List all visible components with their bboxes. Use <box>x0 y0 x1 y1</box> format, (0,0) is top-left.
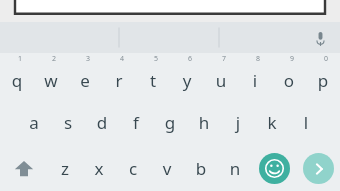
button[interactable]: z <box>48 145 82 191</box>
button[interactable]: Next <box>303 153 334 184</box>
staticText: 3 <box>71 54 105 64</box>
staticText: k <box>255 111 289 134</box>
staticText: h <box>187 111 221 134</box>
button[interactable]: n <box>218 145 252 191</box>
staticText: d <box>85 111 119 134</box>
button[interactable]: g <box>153 99 187 145</box>
button[interactable]: 3 <box>68 53 102 99</box>
staticText: 4 <box>105 54 139 64</box>
staticText: a <box>17 111 51 134</box>
button[interactable]: a <box>17 99 51 145</box>
button[interactable]: h <box>187 99 221 145</box>
staticText: i <box>238 69 272 92</box>
staticText: 5 <box>139 54 173 64</box>
staticText: 0 <box>309 54 340 64</box>
staticText: t <box>136 69 170 92</box>
staticText: c <box>116 157 150 180</box>
staticText: q <box>0 69 34 92</box>
staticText: 8 <box>241 54 275 64</box>
button[interactable]: k <box>255 99 289 145</box>
button[interactable]: 2 <box>34 53 68 99</box>
staticText: l <box>289 111 323 134</box>
button[interactable]: 8 <box>238 53 272 99</box>
staticText: x <box>82 157 116 180</box>
staticText: p <box>306 69 340 92</box>
button[interactable]: 7 <box>204 53 238 99</box>
staticText: f <box>119 111 153 134</box>
staticText: r <box>102 69 136 92</box>
staticText: y <box>170 69 204 92</box>
button[interactable]: 6 <box>170 53 204 99</box>
button[interactable]: Shift <box>0 145 48 191</box>
button[interactable]: b <box>184 145 218 191</box>
button[interactable]: 1 <box>0 53 34 99</box>
button[interactable]: 9 <box>272 53 306 99</box>
staticText: b <box>184 157 218 180</box>
button[interactable]: 0 <box>306 53 340 99</box>
staticText: v <box>150 157 184 180</box>
staticText: e <box>68 69 102 92</box>
staticText: j <box>221 111 255 134</box>
staticText: n <box>218 157 252 180</box>
staticText: 7 <box>207 54 241 64</box>
staticText: 6 <box>173 54 207 64</box>
staticText: w <box>34 69 68 92</box>
button[interactable]: l <box>289 99 323 145</box>
button[interactable]: f <box>119 99 153 145</box>
button[interactable]: d <box>85 99 119 145</box>
button[interactable] <box>15 0 325 15</box>
button[interactable]: Voice input <box>306 24 334 52</box>
button[interactable]: Emoji <box>259 153 290 184</box>
button[interactable]: c <box>116 145 150 191</box>
staticText: 9 <box>275 54 309 64</box>
button[interactable]: v <box>150 145 184 191</box>
staticText: o <box>272 69 306 92</box>
staticText: u <box>204 69 238 92</box>
button[interactable]: x <box>82 145 116 191</box>
staticText: 1 <box>3 54 37 64</box>
button[interactable]: 5 <box>136 53 170 99</box>
staticText: g <box>153 111 187 134</box>
staticText: s <box>51 111 85 134</box>
button[interactable]: 4 <box>102 53 136 99</box>
button[interactable]: s <box>51 99 85 145</box>
button[interactable]: j <box>221 99 255 145</box>
staticText: 2 <box>37 54 71 64</box>
staticText: z <box>48 157 82 180</box>
